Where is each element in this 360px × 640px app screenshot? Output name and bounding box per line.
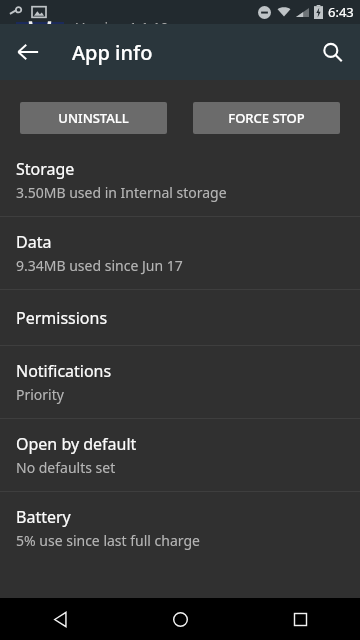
button[interactable]: Permissions — [0, 290, 360, 345]
button[interactable]: Open by default — [0, 419, 360, 491]
button[interactable]: Data — [0, 217, 360, 289]
button[interactable]: Recent apps — [240, 598, 360, 640]
button[interactable]: Notifications — [0, 346, 360, 418]
button[interactable]: FORCE STOP — [193, 102, 340, 134]
button[interactable]: Back — [0, 598, 120, 640]
staticText: Open by default — [16, 433, 137, 455]
button[interactable]: UNINSTALL — [20, 102, 167, 134]
staticText: Battery — [16, 506, 71, 528]
staticText: FORCE STOP — [228, 109, 305, 127]
staticText: Storage — [16, 158, 75, 180]
staticText: App info — [72, 39, 153, 66]
button[interactable]: Search — [304, 24, 360, 80]
button[interactable]: Back — [0, 24, 56, 80]
staticText: No defaults set — [16, 458, 116, 477]
button[interactable]: Battery — [0, 492, 360, 564]
button[interactable]: Storage — [0, 144, 360, 216]
staticText: 5% use since last full charge — [16, 531, 200, 550]
staticText: Notifications — [16, 360, 112, 382]
staticText: 9.34MB used since Jun 17 — [16, 256, 183, 275]
staticText: 3.50MB used in Internal storage — [16, 183, 227, 202]
button[interactable]: Home — [120, 598, 240, 640]
staticText: Data — [16, 231, 52, 253]
staticText: Permissions — [16, 307, 108, 329]
staticText: Priority — [16, 385, 64, 404]
staticText: Version 1.1.10 — [76, 18, 169, 37]
staticText: 6:43 — [328, 3, 354, 21]
staticText: UNINSTALL — [58, 109, 129, 127]
